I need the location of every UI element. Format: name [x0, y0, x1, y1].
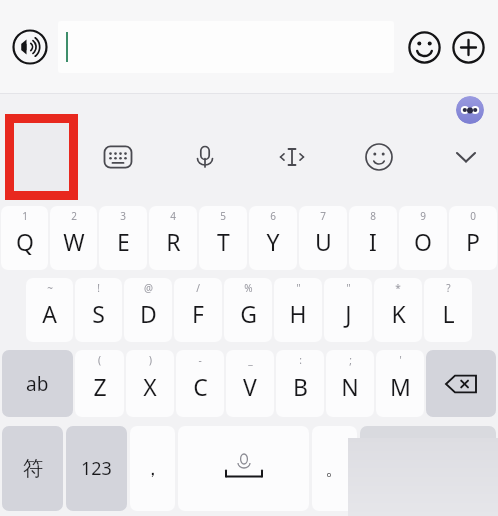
staticText: - [198, 353, 202, 367]
staticText: ; [349, 353, 352, 367]
staticText: U [315, 226, 332, 257]
button[interactable]: 0 [449, 206, 497, 270]
button[interactable]: Keyboard [96, 135, 140, 179]
button[interactable]: Stickers [357, 135, 401, 179]
staticText: 7 [320, 209, 326, 223]
staticText: 符 [23, 456, 43, 481]
staticText: ， [143, 457, 162, 481]
staticText: " [346, 281, 351, 295]
staticText: B [293, 371, 308, 402]
staticText: : [299, 353, 302, 367]
button[interactable]: 8 [349, 206, 397, 270]
button[interactable]: 1 [1, 206, 48, 270]
staticText: N [341, 371, 359, 402]
staticText: T [217, 226, 230, 257]
staticText: 。 [325, 457, 344, 481]
button[interactable]: 5 [199, 206, 247, 270]
button[interactable]: 。 [312, 426, 357, 511]
staticText: @ [144, 281, 153, 295]
staticText: F [192, 298, 204, 329]
button[interactable]: Microphone [183, 135, 227, 179]
staticText: " [296, 281, 301, 295]
button[interactable]: Assistant avatar [456, 96, 484, 124]
staticText: L [442, 298, 455, 329]
button[interactable]: 3 [99, 206, 147, 270]
staticText: P [466, 226, 480, 257]
button[interactable]: ' [376, 350, 424, 417]
button[interactable]: 4 [149, 206, 197, 270]
staticText: 8 [370, 209, 376, 223]
button[interactable]: Hide keyboard [444, 135, 488, 179]
staticText: 9 [420, 209, 426, 223]
staticText: / [196, 281, 200, 295]
button[interactable]: Move cursor [270, 135, 314, 179]
staticText: D [140, 298, 157, 329]
button[interactable]: Backspace [426, 350, 496, 417]
button[interactable]: Emoji [404, 27, 444, 67]
staticText: % [244, 281, 253, 295]
staticText: Q [16, 226, 34, 257]
staticText: X [143, 371, 157, 402]
staticText: ) [149, 353, 152, 367]
button[interactable]: @ [124, 278, 172, 342]
button[interactable]: : [276, 350, 324, 417]
staticText: ab [26, 371, 49, 397]
button[interactable]: Space [178, 426, 309, 511]
staticText: H [289, 298, 307, 329]
staticText: 5 [220, 209, 226, 223]
button[interactable]: - [176, 350, 224, 417]
button[interactable]: % [224, 278, 272, 342]
staticText: 3 [120, 209, 126, 223]
button[interactable]: Voice input [10, 27, 50, 67]
button[interactable]: ; [326, 350, 374, 417]
staticText: Y [266, 226, 280, 257]
button[interactable]: ) [126, 350, 174, 417]
button[interactable]: ? [424, 278, 472, 342]
button[interactable]: ， [130, 426, 175, 511]
staticText: 1 [22, 209, 28, 223]
button[interactable]: ~ [26, 278, 73, 342]
staticText: W [63, 226, 85, 257]
button[interactable]: 9 [399, 206, 447, 270]
staticText: 123 [81, 456, 112, 481]
staticText: ! [97, 281, 100, 295]
staticText: 4 [170, 209, 176, 223]
staticText: 6 [270, 209, 276, 223]
staticText: S [92, 298, 105, 329]
staticText: 2 [71, 209, 77, 223]
button[interactable]: 123 [66, 426, 127, 511]
button[interactable]: ! [75, 278, 122, 342]
button[interactable]: 7 [299, 206, 347, 270]
button[interactable]: _ [226, 350, 274, 417]
staticText: C [193, 371, 208, 402]
button[interactable]: 符 [2, 426, 63, 511]
staticText: V [243, 371, 257, 402]
staticText: ? [446, 281, 451, 295]
staticText: ( [98, 353, 101, 367]
staticText: _ [248, 353, 253, 367]
button[interactable]: * [374, 278, 422, 342]
staticText: O [414, 226, 432, 257]
staticText: ' [399, 353, 402, 367]
button[interactable]: " [274, 278, 322, 342]
staticText: K [391, 298, 406, 329]
button[interactable]: Enter [360, 426, 496, 511]
button[interactable]: " [324, 278, 372, 342]
staticText: G [240, 298, 257, 329]
button[interactable] [58, 21, 394, 73]
button[interactable]: / [174, 278, 222, 342]
button[interactable]: ab [2, 350, 73, 417]
staticText: J [345, 298, 352, 329]
staticText: 0 [470, 209, 476, 223]
staticText: * [395, 281, 401, 295]
button[interactable]: 6 [249, 206, 297, 270]
staticText: M [390, 371, 411, 402]
staticText: E [117, 226, 130, 257]
button[interactable]: ( [75, 350, 124, 417]
staticText: I [369, 226, 377, 257]
staticText: R [166, 226, 181, 257]
button[interactable]: Add [448, 27, 488, 67]
button[interactable]: 2 [50, 206, 97, 270]
staticText: ~ [47, 281, 53, 295]
